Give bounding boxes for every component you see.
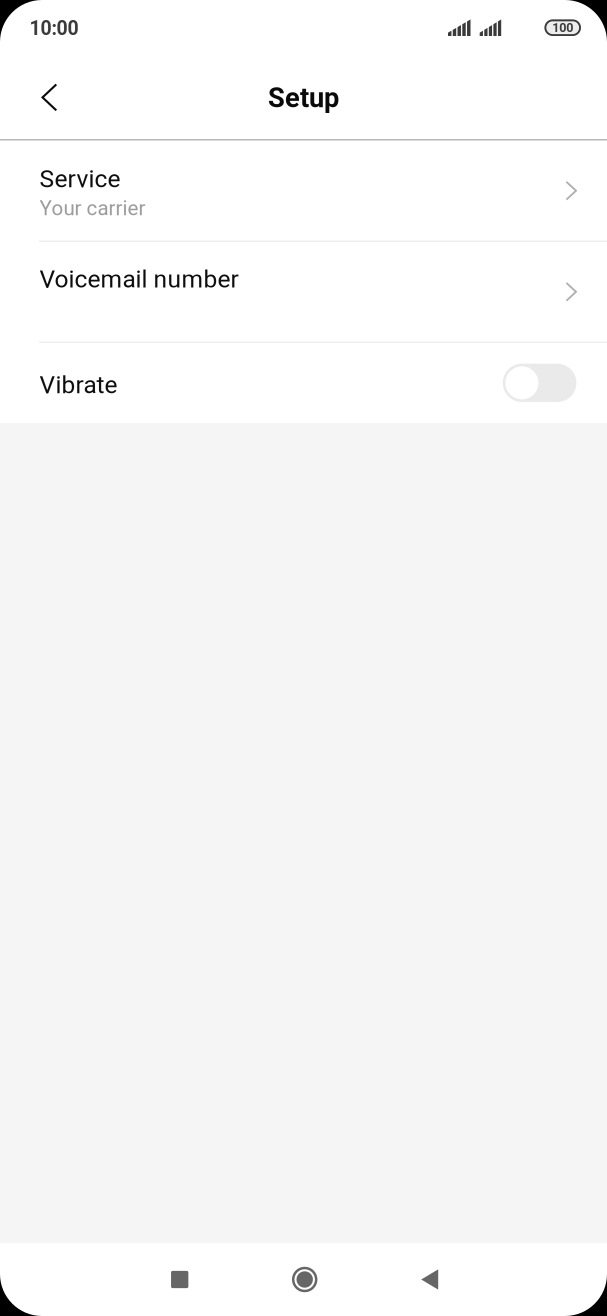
staticText: 10:00 (29, 17, 78, 40)
staticText: Setup (268, 82, 339, 114)
button[interactable]: Recent apps (117, 1243, 242, 1316)
button[interactable]: Back (0, 53, 77, 140)
staticText: Service (40, 164, 121, 193)
button[interactable]: Vibrate (0, 343, 607, 423)
button[interactable]: Home (242, 1243, 367, 1316)
staticText: Voicemail number (40, 265, 239, 293)
staticText: Your carrier (40, 196, 146, 220)
button[interactable]: Voicemail number (0, 242, 607, 341)
button[interactable]: Service (0, 141, 607, 240)
staticText: Vibrate (40, 371, 118, 399)
button[interactable]: Back (367, 1243, 492, 1316)
staticText: 100 (552, 20, 573, 35)
